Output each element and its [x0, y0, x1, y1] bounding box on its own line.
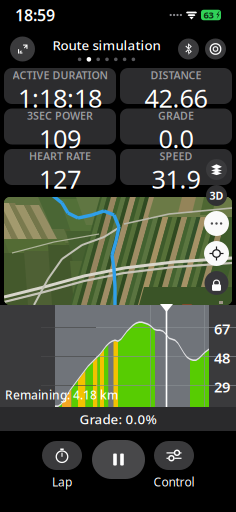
staticText: 3D [209, 188, 223, 203]
button[interactable]: Bluetooth [178, 38, 199, 59]
button[interactable]: Lap [40, 441, 84, 490]
staticText: 109 [39, 122, 81, 155]
button[interactable]: More [204, 211, 229, 236]
button[interactable]: Settings [205, 38, 226, 59]
staticText: 42.66 [144, 81, 207, 115]
staticText: 3SEC POWER [27, 108, 93, 123]
staticText: ACTIVE DURATION [12, 68, 107, 82]
staticText: Lap [52, 474, 72, 490]
staticText: 1:18:18 [18, 81, 102, 115]
staticText: 31.9 [151, 162, 200, 196]
button[interactable]: Pause [92, 440, 145, 479]
staticText: 29 [214, 377, 230, 396]
staticText: DISTANCE [150, 68, 201, 82]
button[interactable]: 3D view [206, 185, 227, 206]
staticText: Grade: 0.0% [79, 410, 156, 428]
button[interactable]: Expand [10, 36, 35, 61]
staticText: GRADE [158, 108, 194, 123]
staticText: 98 [183, 304, 191, 312]
button[interactable]: Recenter [204, 241, 229, 266]
button[interactable]: Control [152, 441, 196, 490]
staticText: Remaining: 4.18 km [5, 387, 118, 403]
staticText: Control [153, 474, 194, 490]
button[interactable]: Lock map [204, 271, 228, 295]
staticText: HEART RATE [29, 149, 91, 163]
button[interactable]: Map layers [206, 159, 227, 180]
staticText: 0.0 [158, 122, 193, 155]
staticText: SPEED [159, 149, 192, 163]
staticText: 18:59 [15, 4, 55, 26]
staticText: Baldram [115, 310, 152, 323]
staticText: 63 [203, 9, 213, 21]
staticText: 67 [214, 319, 230, 338]
staticText: Route simulation [52, 36, 160, 54]
staticText: 127 [39, 162, 81, 196]
staticText: 48 [214, 348, 230, 367]
staticText: apbox [117, 328, 144, 341]
